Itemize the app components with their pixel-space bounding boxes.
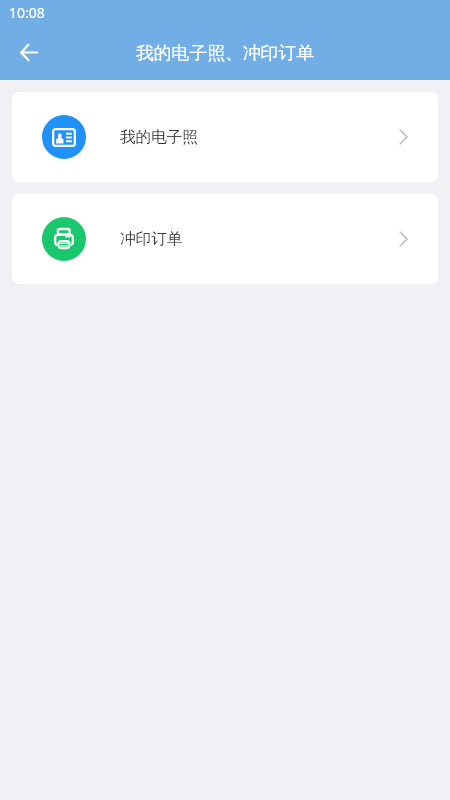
button[interactable]: 我的电子照 [12, 92, 438, 182]
button[interactable]: Back [0, 25, 57, 80]
staticText: 我的电子照、冲印订单 [136, 42, 314, 64]
staticText: 我的电子照 [120, 127, 198, 147]
button[interactable]: 冲印订单 [12, 194, 438, 284]
staticText: 冲印订单 [120, 229, 183, 249]
staticText: 10:08 [9, 3, 45, 22]
